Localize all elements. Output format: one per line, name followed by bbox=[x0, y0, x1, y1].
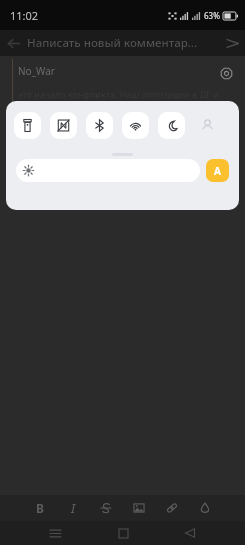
staticText: 63% bbox=[204, 10, 220, 21]
staticText: B bbox=[36, 500, 44, 516]
button[interactable]: Settings bbox=[215, 62, 237, 84]
button[interactable]: Auto brightness bbox=[206, 159, 229, 182]
staticText: No_War bbox=[18, 64, 55, 78]
button[interactable]: Recents bbox=[43, 521, 67, 545]
button[interactable]: Text colour bbox=[195, 498, 215, 518]
button[interactable]: Bold bbox=[30, 498, 50, 518]
staticText: I bbox=[71, 500, 76, 516]
button[interactable]: Back bbox=[0, 30, 26, 56]
button[interactable]: Italic bbox=[63, 498, 83, 518]
button[interactable]: Insert image bbox=[129, 498, 149, 518]
button[interactable]: Send bbox=[219, 30, 245, 56]
staticText: это начало конфликта. Наш оппозиции в ДГ… bbox=[18, 88, 219, 100]
button[interactable]: Do not disturb bbox=[158, 112, 185, 139]
staticText: 11:02 bbox=[10, 8, 39, 23]
button[interactable]: NFC bbox=[50, 112, 77, 139]
button[interactable]: Insert link bbox=[162, 498, 182, 518]
button[interactable]: Brightness bbox=[16, 159, 200, 182]
staticText: A bbox=[214, 164, 221, 178]
staticText: Саратов в частности bbox=[10, 167, 110, 181]
button[interactable]: Wi-Fi bbox=[122, 112, 149, 139]
button[interactable]: Flashlight bbox=[14, 112, 41, 139]
button[interactable]: Bluetooth bbox=[86, 112, 113, 139]
button[interactable]: Home bbox=[111, 521, 135, 545]
staticText: Написать новый комментар... bbox=[27, 35, 198, 51]
button[interactable]: Back bbox=[178, 521, 202, 545]
button[interactable]: Strikethrough bbox=[96, 498, 116, 518]
button[interactable]: User bbox=[194, 112, 221, 139]
